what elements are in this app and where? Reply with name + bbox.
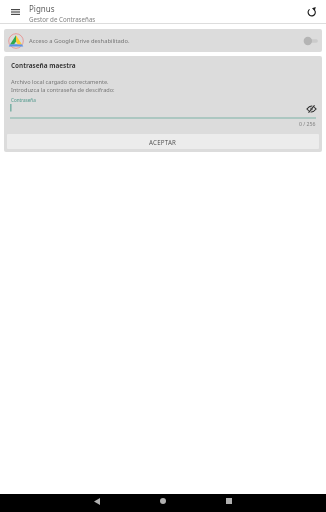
staticText: Gestor de Contraseñas xyxy=(29,15,96,23)
staticText: Archivo local cargado correctamente. xyxy=(11,78,109,86)
staticText: Introduzca la contraseña de descifrado: xyxy=(11,86,115,94)
button[interactable]: Toggle Google Drive xyxy=(301,34,319,48)
staticText: Contraseña xyxy=(11,97,36,103)
button[interactable]: Show password xyxy=(304,102,318,116)
button[interactable]: Acceso a Google Drive deshabilitado. xyxy=(4,29,322,52)
button[interactable]: ACEPTAR xyxy=(7,134,319,149)
button[interactable]: Recents xyxy=(218,492,240,510)
staticText: 0 / 256 xyxy=(299,120,316,127)
staticText: Contraseña maestra xyxy=(11,61,76,70)
button[interactable]: Home xyxy=(152,492,174,510)
button[interactable]: Menu xyxy=(3,0,27,24)
staticText: ACEPTAR xyxy=(149,138,177,146)
button[interactable]: Refresh xyxy=(300,0,324,24)
button[interactable]: Back xyxy=(86,492,108,510)
staticText: Acceso a Google Drive deshabilitado. xyxy=(29,37,130,45)
staticText: Pignus xyxy=(29,3,55,14)
